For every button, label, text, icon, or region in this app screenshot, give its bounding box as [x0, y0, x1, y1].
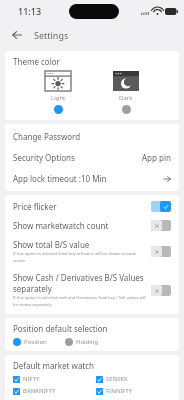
staticText: 11:13	[18, 5, 42, 17]
button[interactable]: Security Options	[5, 147, 179, 168]
button[interactable]: App lock timeout :10 Min	[5, 168, 179, 189]
button[interactable]: NIFTY	[13, 375, 96, 383]
staticText: App lock timeout :10 Min	[13, 173, 163, 184]
staticText: SENSEX	[106, 375, 128, 383]
button[interactable]: Price flicker	[5, 197, 179, 216]
staticText: Security Options	[13, 152, 142, 163]
button[interactable]: Back	[8, 26, 26, 44]
button[interactable]: Off	[151, 285, 171, 296]
button[interactable]: On	[151, 201, 171, 212]
staticText: Holding	[76, 338, 99, 346]
staticText: BANKNIFTY	[23, 387, 56, 395]
button[interactable]: Dark	[107, 69, 145, 116]
staticText: Theme color	[13, 56, 60, 67]
button[interactable]: FINNIFTY	[96, 387, 179, 395]
staticText: NIFTY	[23, 375, 40, 383]
button[interactable]: Holding	[65, 338, 99, 346]
button[interactable]: Show total B/S value	[5, 235, 179, 268]
staticText: Price flicker	[13, 201, 57, 212]
button[interactable]: Change Password	[5, 126, 179, 147]
button[interactable]: SENSEX	[96, 375, 179, 383]
staticText: Change Password	[13, 131, 171, 142]
staticText: If this option is selected Total buy sel…	[13, 251, 147, 264]
button[interactable]: BANKNIFTY	[13, 387, 96, 395]
staticText: Settings	[34, 29, 69, 41]
staticText: Position	[24, 338, 47, 346]
staticText: Show total B/S value	[13, 239, 90, 250]
button[interactable]: Off	[151, 220, 171, 231]
staticText: Dark	[119, 94, 133, 102]
staticText: Show marketwatch count	[13, 220, 109, 231]
button[interactable]: Light	[39, 69, 77, 116]
button[interactable]: Show Cash / Derivatives B/S Values separ…	[5, 268, 179, 312]
staticText: FINNIFTY	[106, 387, 133, 395]
staticText: Light	[51, 94, 66, 102]
staticText: Position default selection	[13, 323, 108, 334]
button[interactable]: Show marketwatch count	[5, 216, 179, 235]
staticText: Default market watch	[13, 360, 95, 371]
button[interactable]: Off	[151, 246, 171, 257]
staticText: Show Cash / Derivatives B/S Values separ…	[13, 272, 147, 294]
button[interactable]: Position	[13, 338, 51, 346]
staticText: App pin	[142, 152, 171, 163]
staticText: If this option is selected cash and Deri…	[13, 295, 147, 308]
